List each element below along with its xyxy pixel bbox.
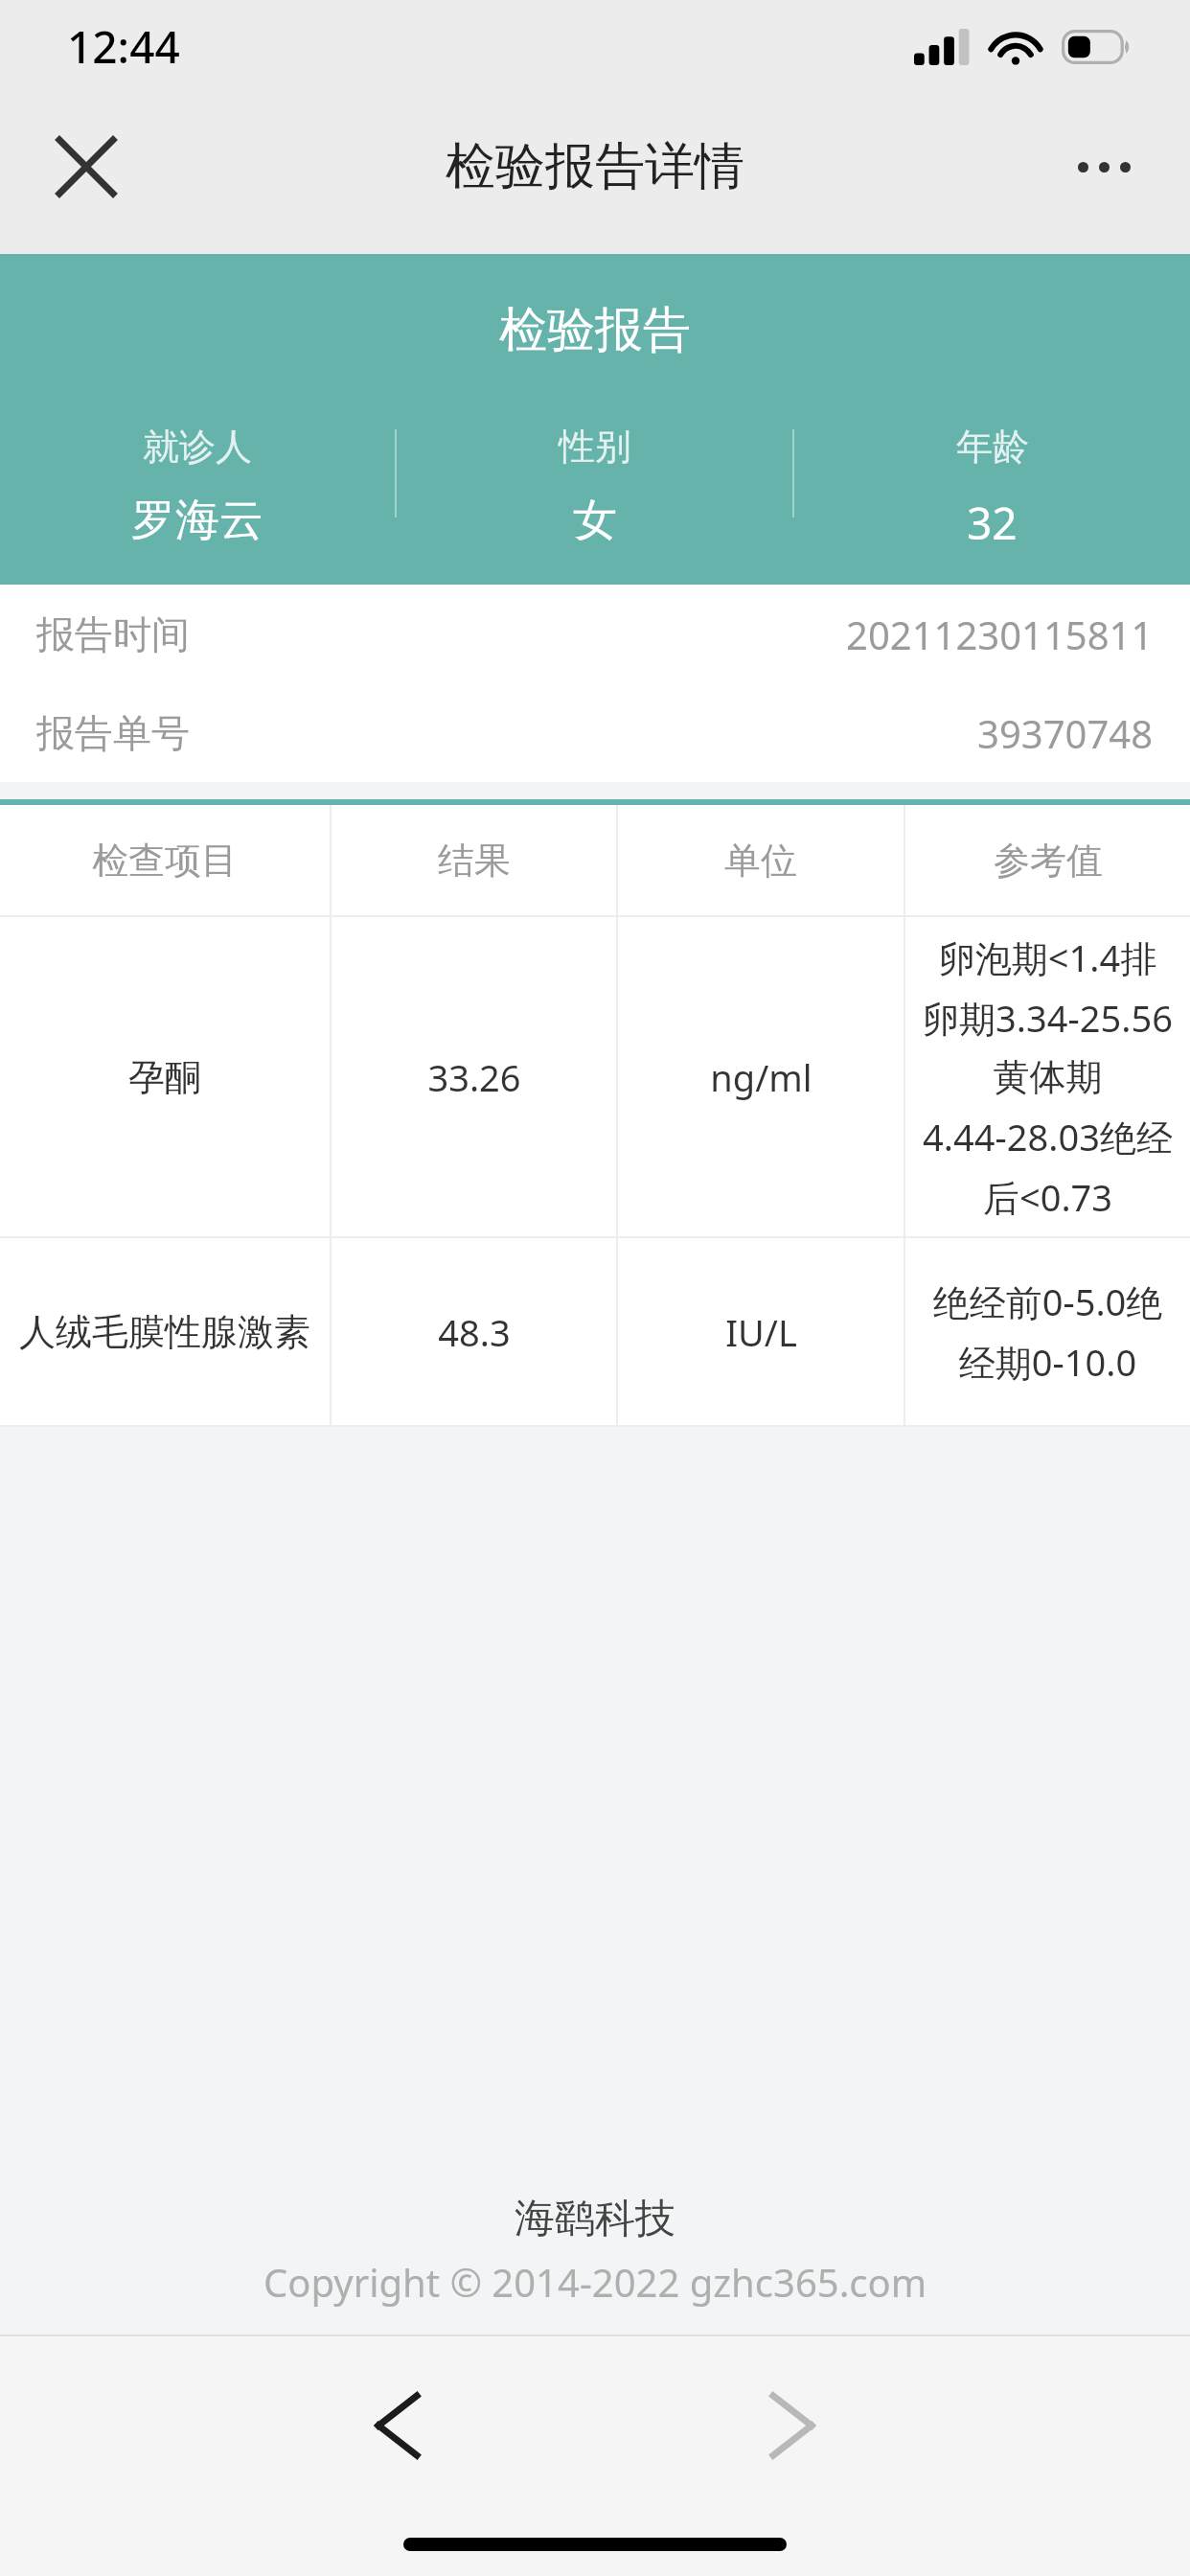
staticText: 32: [967, 493, 1018, 553]
staticText: 39370748: [977, 707, 1154, 759]
staticText: 33.26: [427, 1052, 521, 1102]
button[interactable]: Close: [29, 109, 144, 224]
staticText: 检验报告详情: [446, 135, 744, 198]
staticText: 检验报告: [0, 300, 1190, 360]
button[interactable]: 报告单号: [0, 683, 1190, 782]
staticText: IU/L: [725, 1307, 797, 1357]
button[interactable]: 报告时间: [0, 585, 1190, 683]
staticText: 女: [573, 493, 617, 548]
staticText: 20211230115811: [846, 609, 1154, 660]
staticText: 报告时间: [36, 610, 190, 658]
staticText: 性别: [559, 424, 631, 470]
button[interactable]: 孕酮: [0, 917, 1190, 1236]
staticText: 绝经前0-5.0绝经期0-10.0: [923, 1276, 1173, 1387]
button[interactable]: 人绒毛膜性腺激素: [0, 1238, 1190, 1425]
staticText: 48.3: [438, 1307, 511, 1357]
staticText: 参考值: [994, 838, 1103, 884]
staticText: 12:44: [67, 16, 180, 77]
staticText: 人绒毛膜性腺激素: [19, 1309, 310, 1355]
button[interactable]: Back: [345, 2373, 450, 2478]
button[interactable]: Forward: [740, 2373, 845, 2478]
staticText: 海鹞科技: [515, 2194, 675, 2244]
staticText: 结果: [438, 838, 511, 884]
button[interactable]: More options: [1046, 109, 1161, 224]
staticText: ng/ml: [710, 1052, 812, 1102]
button[interactable]: 检查项目: [0, 805, 1190, 915]
staticText: 罗海云: [131, 493, 263, 548]
staticText: 报告单号: [36, 709, 190, 757]
staticText: 单位: [724, 838, 797, 884]
staticText: 检查项目: [92, 838, 238, 884]
staticText: 孕酮: [128, 1054, 201, 1100]
staticText: 年龄: [956, 424, 1029, 470]
staticText: Copyright © 2014-2022 gzhc365.com: [263, 2256, 927, 2308]
staticText: 卵泡期<1.4排卵期3.34-25.56黄体期4.44-28.03绝经后<0.7…: [923, 932, 1173, 1222]
staticText: 就诊人: [143, 424, 252, 470]
